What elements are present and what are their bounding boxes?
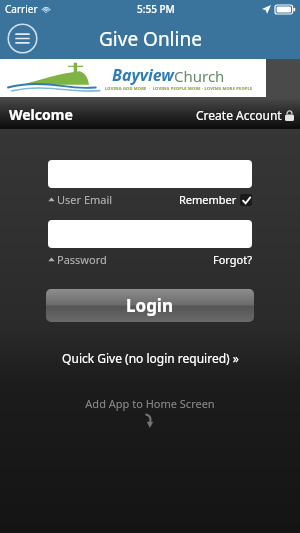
staticText: Password [57, 252, 107, 267]
staticText: Carrier [5, 2, 38, 16]
staticText: Forgot? [213, 252, 252, 267]
button[interactable]: Menu [7, 23, 38, 54]
button[interactable]: Remember [179, 192, 252, 207]
staticText: Bayview [112, 64, 174, 86]
button[interactable]: Create Account [196, 107, 294, 123]
button[interactable]: Login [46, 289, 254, 322]
staticText: Remember [179, 192, 237, 207]
button[interactable] [48, 160, 252, 188]
button[interactable]: Forgot? [213, 252, 252, 267]
staticText: LOVING GOD MORE · LOVING PEOPLE MORE · L… [105, 86, 253, 91]
staticText: Welcome [9, 105, 73, 124]
staticText: Create Account [196, 107, 282, 123]
button[interactable] [48, 220, 252, 248]
button[interactable]: Quick Give (no login required) » [0, 350, 300, 366]
staticText: Church [174, 66, 225, 86]
staticText: Give Online [99, 26, 202, 52]
staticText: Login [126, 294, 174, 317]
staticText: Quick Give (no login required) » [62, 350, 239, 366]
button[interactable]: Bayview [0, 59, 266, 97]
staticText: Add App to Home Screen [85, 396, 215, 411]
staticText: User Email [57, 192, 113, 207]
staticText: 5:55 PM [137, 2, 175, 16]
